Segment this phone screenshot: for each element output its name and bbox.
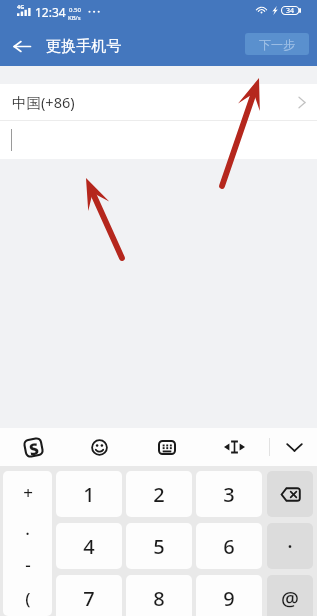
- staticText: KB/s: [68, 14, 81, 22]
- button[interactable]: Hide keyboard: [274, 428, 314, 466]
- staticText: 5: [153, 533, 165, 560]
- button[interactable]: 8: [126, 575, 192, 616]
- button[interactable]: [267, 471, 313, 517]
- staticText: 12:34: [35, 4, 66, 20]
- button[interactable]: Switch keyboard: [147, 428, 187, 466]
- button[interactable]: @: [267, 575, 313, 616]
- staticText: 7: [83, 585, 95, 612]
- staticText: @: [281, 585, 299, 612]
- button[interactable]: Move cursor: [214, 428, 254, 466]
- button[interactable]: -: [3, 547, 52, 581]
- button[interactable]: 下一步: [245, 33, 309, 55]
- button[interactable]: Back: [6, 26, 38, 66]
- staticText: 8: [153, 585, 165, 612]
- staticText: 中国(+86): [12, 92, 75, 112]
- staticText: +: [23, 481, 33, 504]
- button[interactable]: 7: [56, 575, 122, 616]
- staticText: (: [25, 587, 31, 610]
- button[interactable]: 3: [196, 471, 262, 517]
- staticText: 6: [223, 533, 235, 560]
- staticText: 下一步: [259, 37, 295, 52]
- button[interactable]: 6: [196, 523, 262, 569]
- button[interactable]: +: [3, 475, 52, 509]
- staticText: 4: [83, 533, 95, 560]
- button[interactable]: 1: [56, 471, 122, 517]
- button[interactable]: Sogou input settings: [13, 428, 53, 466]
- staticText: S: [27, 437, 41, 458]
- button[interactable]: ·: [3, 516, 52, 550]
- staticText: 1: [83, 481, 95, 508]
- staticText: 34: [286, 6, 295, 15]
- button[interactable]: (: [3, 581, 52, 615]
- button[interactable]: ·: [267, 523, 313, 569]
- staticText: 2: [153, 481, 165, 508]
- staticText: 0.50: [69, 6, 81, 14]
- staticText: 4G: [17, 3, 25, 10]
- button[interactable]: Emoji: [79, 428, 119, 466]
- button[interactable]: 2: [126, 471, 192, 517]
- staticText: -: [25, 553, 31, 576]
- button[interactable]: 中国(+86): [0, 84, 317, 120]
- staticText: 3: [223, 481, 235, 508]
- staticText: ·: [287, 533, 293, 560]
- staticText: ·: [25, 522, 30, 545]
- button[interactable]: 5: [126, 523, 192, 569]
- staticText: 更换手机号: [46, 37, 122, 56]
- staticText: 9: [223, 585, 235, 612]
- button[interactable]: 4: [56, 523, 122, 569]
- button[interactable]: 9: [196, 575, 262, 616]
